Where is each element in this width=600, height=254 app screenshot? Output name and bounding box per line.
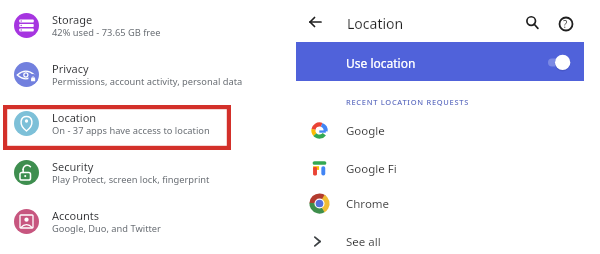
staticText: RECENT LOCATION REQUESTS bbox=[346, 97, 470, 107]
button[interactable]: Search bbox=[524, 14, 540, 30]
button[interactable]: Use location bbox=[296, 42, 584, 81]
staticText: Google bbox=[346, 123, 385, 139]
staticText: Google Fi bbox=[346, 161, 397, 177]
button[interactable]: Location bbox=[0, 98, 285, 147]
button[interactable]: Security bbox=[0, 147, 285, 196]
button[interactable]: Google bbox=[296, 113, 586, 148]
staticText: Play Protect, screen lock, fingerprint bbox=[52, 173, 210, 186]
button[interactable]: Google Fi bbox=[296, 151, 586, 186]
staticText: Privacy bbox=[52, 61, 89, 76]
staticText: Location bbox=[52, 110, 97, 125]
button[interactable]: Storage bbox=[0, 0, 285, 49]
staticText: Use location bbox=[346, 55, 416, 71]
button[interactable]: Back bbox=[305, 13, 323, 31]
button[interactable]: Help bbox=[557, 15, 575, 33]
staticText: On - 37 apps have access to location bbox=[52, 124, 210, 137]
staticText: Permissions, account activity, personal … bbox=[52, 75, 243, 88]
staticText: ? bbox=[563, 17, 568, 31]
staticText: Security bbox=[52, 159, 94, 174]
button[interactable]: Chrome bbox=[296, 186, 586, 221]
staticText: 42% used - 73.65 GB free bbox=[52, 26, 161, 39]
staticText: See all bbox=[346, 234, 381, 250]
staticText: Location bbox=[347, 14, 404, 33]
staticText: Storage bbox=[52, 12, 93, 27]
button[interactable]: Accounts bbox=[0, 196, 285, 245]
staticText: Accounts bbox=[52, 208, 100, 223]
staticText: Google, Duo, and Twitter bbox=[52, 222, 161, 235]
button[interactable]: See all bbox=[296, 224, 586, 254]
button[interactable]: Privacy bbox=[0, 49, 285, 98]
staticText: Chrome bbox=[346, 196, 390, 212]
